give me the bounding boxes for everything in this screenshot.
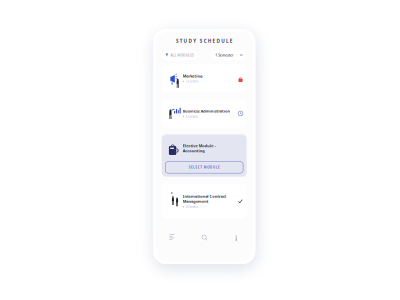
button[interactable]: Business Administration <box>174 243 400 300</box>
staticText: ALL MODULES <box>201 97 275 112</box>
button[interactable]: Marketing <box>174 133 400 221</box>
staticText: S T U D Y S C H E D U L E <box>218 50 395 69</box>
button[interactable]: ALL MODULES <box>174 89 287 119</box>
staticText: 3 Credits <box>249 181 289 193</box>
staticText: Marketing <box>240 162 302 178</box>
